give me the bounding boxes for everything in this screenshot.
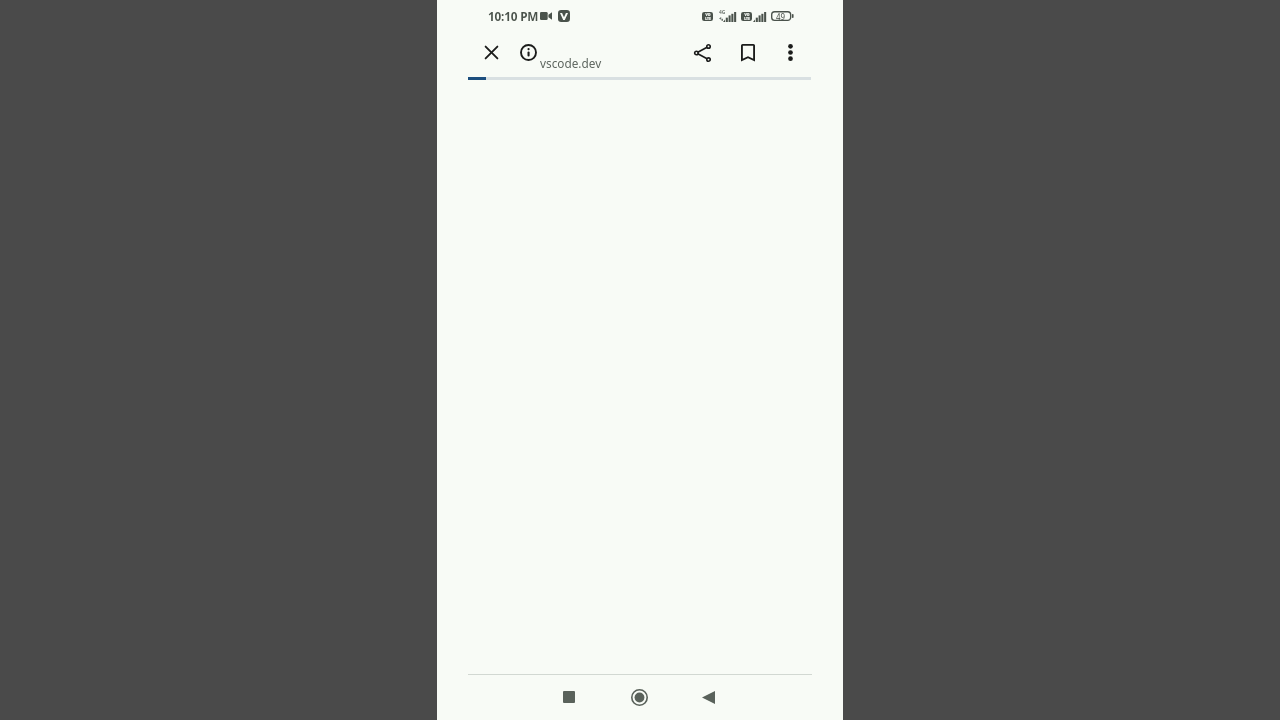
staticText: 49 bbox=[776, 11, 786, 21]
staticText: 4G bbox=[719, 9, 726, 16]
button[interactable]: Close bbox=[475, 36, 508, 69]
button[interactable]: Share bbox=[685, 36, 719, 70]
staticText: VO LTE bbox=[744, 12, 750, 21]
staticText: vscode.dev bbox=[540, 55, 602, 71]
button[interactable]: Back bbox=[686, 675, 730, 719]
button[interactable]: Bookmark bbox=[731, 35, 765, 69]
staticText: 10:10 PM bbox=[488, 8, 539, 24]
staticText: VO LTE bbox=[705, 12, 711, 21]
button[interactable]: Recent apps bbox=[547, 675, 591, 719]
button[interactable]: Site information bbox=[512, 36, 544, 68]
button[interactable]: Home bbox=[617, 675, 661, 719]
button[interactable]: More options bbox=[773, 35, 807, 69]
